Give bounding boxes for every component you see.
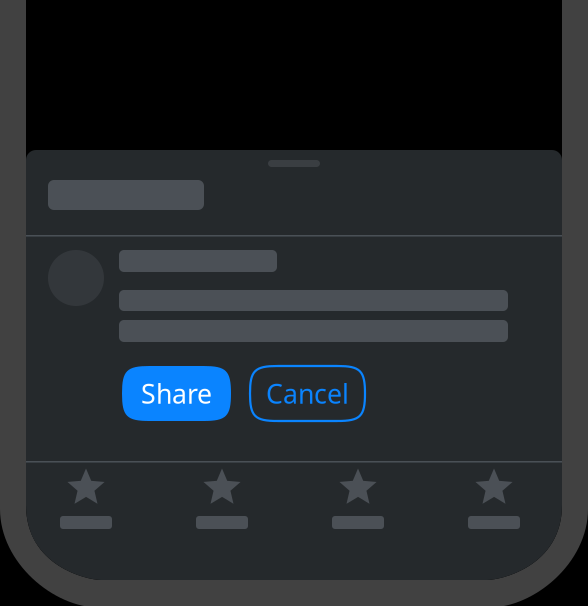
staticText: Cancel — [266, 376, 349, 411]
button[interactable]: Second tab — [167, 467, 277, 543]
button[interactable]: Share — [122, 366, 231, 421]
staticText: Share — [141, 376, 212, 411]
button[interactable]: First tab — [31, 467, 141, 543]
button[interactable]: Cancel — [250, 366, 365, 421]
button[interactable]: Fourth tab — [439, 467, 549, 543]
button[interactable]: Third tab — [303, 467, 413, 543]
